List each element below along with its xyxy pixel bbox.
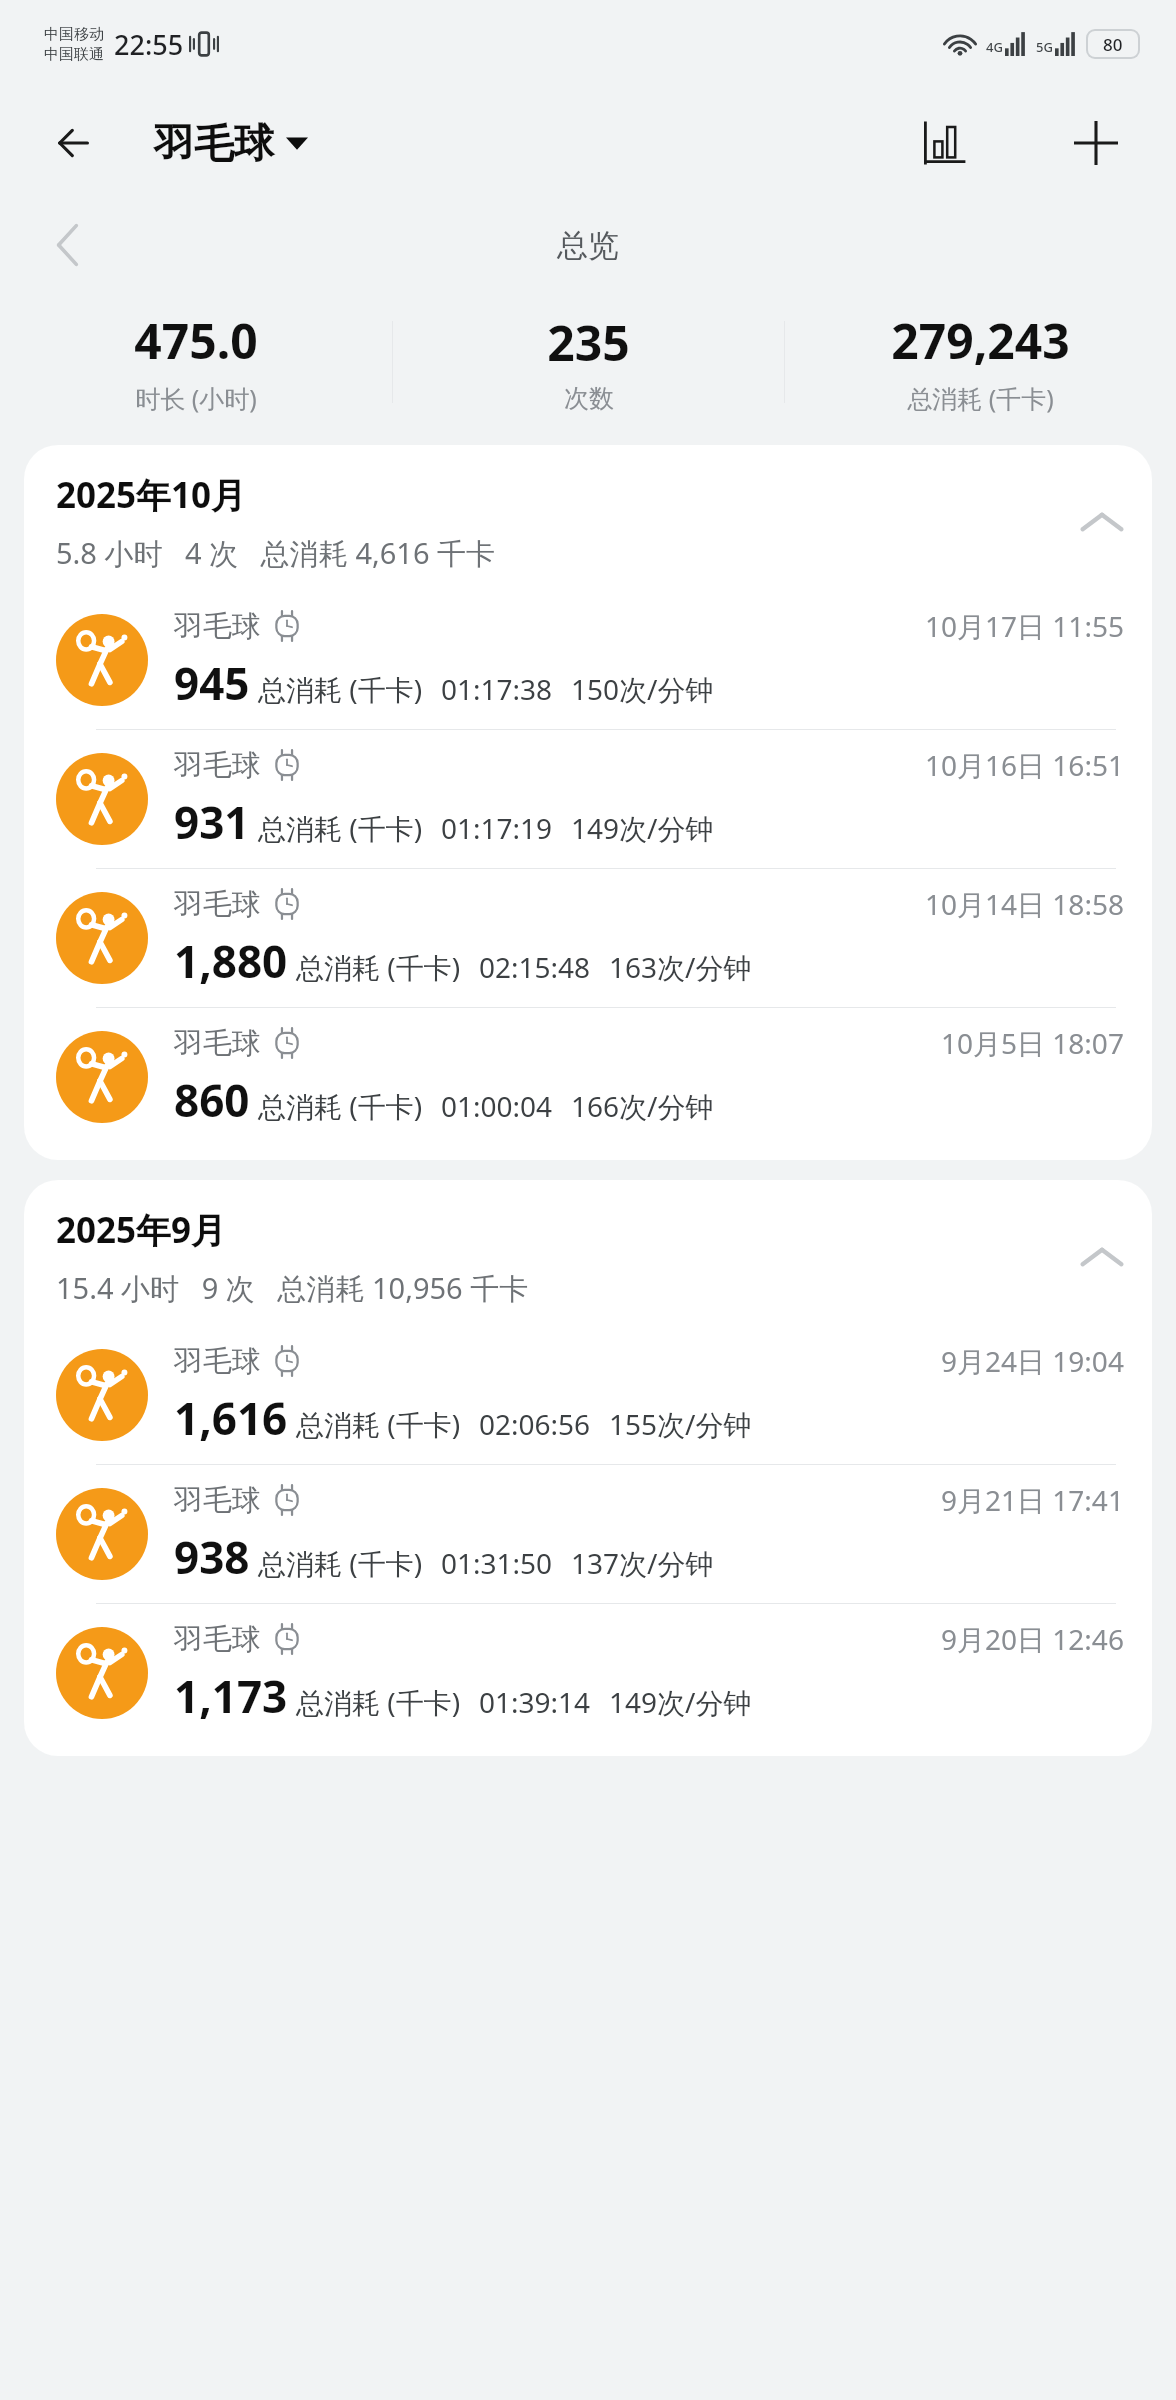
staticText: 总消耗 (千卡) [296, 1405, 461, 1443]
staticText: 149次/分钟 [609, 1683, 752, 1721]
staticText: 总消耗 (千卡) [907, 381, 1054, 415]
staticText: 9月21日 17:41 [941, 1481, 1124, 1519]
button[interactable]: 2025年9月 [24, 1180, 1152, 1326]
button[interactable]: 羽毛球 [24, 591, 1152, 729]
staticText: 235 [547, 310, 630, 375]
staticText: 166次/分钟 [571, 1087, 714, 1125]
button[interactable]: 上一页 [36, 213, 100, 277]
staticText: 15.4 小时 9 次 总消耗 10,956 千卡 [56, 1268, 529, 1308]
staticText: 279,243 [891, 308, 1070, 373]
staticText: 10月17日 11:55 [925, 607, 1124, 645]
staticText: 4G [986, 38, 1003, 56]
staticText: 总消耗 (千卡) [296, 1683, 461, 1721]
staticText: 羽毛球 [174, 886, 261, 923]
staticText: 475.0 [134, 308, 258, 373]
staticText: 02:06:56 [479, 1405, 591, 1443]
staticText: 羽毛球 [174, 1621, 261, 1658]
staticText: 1,880 [174, 931, 288, 991]
staticText: 01:31:50 [441, 1544, 553, 1582]
staticText: 总览 [557, 226, 619, 265]
staticText: 次数 [564, 383, 614, 414]
button[interactable]: 羽毛球 [24, 1604, 1152, 1742]
staticText: 860 [174, 1070, 250, 1130]
staticText: 01:17:19 [441, 809, 553, 847]
staticText: 938 [174, 1527, 250, 1587]
staticText: 5G [1036, 38, 1053, 56]
staticText: 羽毛球 [174, 1343, 261, 1380]
staticText: 总消耗 (千卡) [258, 1087, 423, 1125]
staticText: 1,616 [174, 1388, 288, 1448]
staticText: 5.8 小时 4 次 总消耗 4,616 千卡 [56, 533, 496, 573]
button[interactable]: 添加记录 [1060, 107, 1132, 179]
staticText: 2025年10月 [56, 471, 247, 519]
button[interactable]: 279,243 [785, 302, 1176, 421]
button[interactable]: 2025年10月 [24, 445, 1152, 591]
staticText: 01:39:14 [479, 1683, 591, 1721]
staticText: 时长 (小时) [135, 381, 257, 415]
staticText: 羽毛球 [174, 608, 261, 645]
staticText: 总消耗 (千卡) [296, 948, 461, 986]
staticText: 羽毛球 [154, 118, 274, 168]
staticText: 137次/分钟 [571, 1544, 714, 1582]
staticText: 总消耗 (千卡) [258, 809, 423, 847]
staticText: 10月5日 18:07 [941, 1024, 1124, 1062]
staticText: 2025年9月 [56, 1206, 227, 1254]
staticText: 羽毛球 [174, 1482, 261, 1519]
staticText: 9月20日 12:46 [941, 1620, 1124, 1658]
staticText: 01:00:04 [441, 1087, 553, 1125]
staticText: 总消耗 (千卡) [258, 1544, 423, 1582]
button[interactable]: 羽毛球 [24, 1465, 1152, 1603]
staticText: 中国联通 [44, 45, 104, 64]
staticText: 149次/分钟 [571, 809, 714, 847]
staticText: 22:55 [114, 26, 184, 63]
staticText: 1,173 [174, 1666, 288, 1726]
staticText: 163次/分钟 [609, 948, 752, 986]
button[interactable]: 羽毛球 [24, 1008, 1152, 1146]
button[interactable]: 返回 [40, 109, 108, 177]
button[interactable]: 475.0 [0, 302, 392, 421]
button[interactable]: 羽毛球 [24, 1326, 1152, 1464]
staticText: 9月24日 19:04 [941, 1342, 1124, 1380]
staticText: 羽毛球 [174, 747, 261, 784]
staticText: 01:17:38 [441, 670, 553, 708]
staticText: 155次/分钟 [609, 1405, 752, 1443]
staticText: 945 [174, 653, 250, 713]
button[interactable]: 统计图表 [908, 107, 980, 179]
staticText: 10月14日 18:58 [925, 885, 1124, 923]
staticText: 150次/分钟 [571, 670, 714, 708]
button[interactable]: 羽毛球 [24, 869, 1152, 1007]
staticText: 80 [1103, 33, 1123, 56]
button[interactable]: 羽毛球 [24, 730, 1152, 868]
staticText: 羽毛球 [174, 1025, 261, 1062]
staticText: 931 [174, 792, 250, 852]
staticText: 02:15:48 [479, 948, 591, 986]
staticText: 中国移动 [44, 25, 104, 44]
staticText: 10月16日 16:51 [925, 746, 1124, 784]
button[interactable]: 羽毛球 [148, 114, 314, 172]
button[interactable]: 235 [393, 304, 784, 420]
staticText: 总消耗 (千卡) [258, 670, 423, 708]
